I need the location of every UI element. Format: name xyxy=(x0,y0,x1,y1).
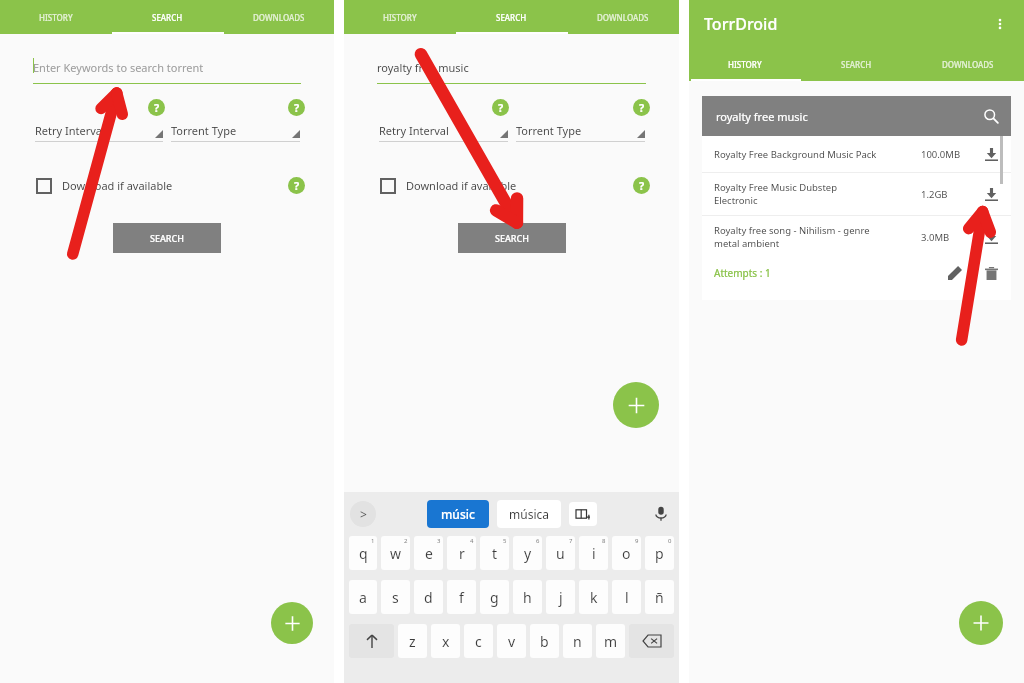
staticText: metal ambient xyxy=(714,237,780,250)
button[interactable]: Retry Interval xyxy=(35,123,163,142)
button[interactable]: Royalty Free Background Music Pack xyxy=(714,136,1001,172)
button[interactable] xyxy=(36,178,52,194)
staticText: l xyxy=(625,588,629,607)
button[interactable]: b xyxy=(530,624,559,658)
button[interactable]: Edit xyxy=(945,263,965,283)
button[interactable]: Add xyxy=(613,382,659,428)
staticText: HISTORY xyxy=(383,12,417,23)
staticText: 3.0MB xyxy=(921,231,950,244)
button[interactable]: s xyxy=(381,580,410,614)
button[interactable]: More options xyxy=(988,12,1012,36)
button[interactable]: Download xyxy=(981,184,1001,204)
button[interactable]: SEARCH xyxy=(800,47,912,81)
button[interactable]: Royalty Free Music Dubstep xyxy=(714,173,1001,215)
button[interactable]: m xyxy=(596,624,625,658)
button[interactable]: r xyxy=(447,536,476,570)
staticText: ? xyxy=(154,100,160,115)
button[interactable]: SEARCH xyxy=(458,223,566,253)
button[interactable]: Download xyxy=(981,144,1001,164)
staticText: 0 xyxy=(668,537,672,545)
staticText: DOWNLOADS xyxy=(942,59,994,70)
staticText: Retry Interval xyxy=(379,123,449,138)
button[interactable]: c xyxy=(464,624,493,658)
button[interactable]: Backspace xyxy=(629,624,674,658)
staticText: Royalty Free Background Music Pack xyxy=(714,148,877,161)
staticText: SEARCH xyxy=(496,12,527,23)
button[interactable]: a xyxy=(349,580,377,614)
button[interactable]: p xyxy=(645,536,674,570)
button[interactable]: x xyxy=(431,624,460,658)
button[interactable]: Add xyxy=(271,602,313,644)
staticText: c xyxy=(475,632,482,651)
button[interactable]: z xyxy=(398,624,427,658)
button[interactable]: Torrent Type xyxy=(516,123,645,142)
button[interactable]: músic xyxy=(427,500,489,528)
button[interactable]: i xyxy=(579,536,608,570)
staticText: a xyxy=(359,588,367,607)
button[interactable]: música xyxy=(497,500,561,528)
staticText: 3 xyxy=(437,537,441,545)
button[interactable]: y xyxy=(513,536,542,570)
staticText: HISTORY xyxy=(728,59,762,70)
button[interactable]: j xyxy=(546,580,575,614)
button[interactable]: Shift xyxy=(349,624,394,658)
button[interactable]: Torrent Type xyxy=(171,123,300,142)
staticText: s xyxy=(392,588,399,607)
button[interactable]: SEARCH xyxy=(113,223,221,253)
button[interactable]: n xyxy=(563,624,592,658)
staticText: 100.0MB xyxy=(921,148,961,161)
button[interactable]: HISTORY xyxy=(0,0,112,34)
staticText: > xyxy=(360,506,367,522)
button[interactable]: More suggestions xyxy=(350,501,376,527)
button[interactable]: Add xyxy=(959,601,1003,645)
button[interactable]: SEARCH xyxy=(455,0,567,34)
button[interactable]: g xyxy=(480,580,509,614)
button[interactable]: ñ xyxy=(645,580,674,614)
button[interactable]: e xyxy=(414,536,443,570)
button[interactable]: Help xyxy=(288,99,305,116)
button[interactable]: Royalty free song - Nihilism - genre xyxy=(714,216,1001,258)
button[interactable]: t xyxy=(480,536,509,570)
button[interactable]: f xyxy=(447,580,476,614)
staticText: d xyxy=(424,588,433,607)
button[interactable]: u xyxy=(546,536,575,570)
button[interactable]: HISTORY xyxy=(689,47,800,81)
button[interactable]: Help xyxy=(288,177,305,194)
staticText: SEARCH xyxy=(150,232,184,244)
button[interactable]: Download xyxy=(981,227,1001,247)
button[interactable]: Retry Interval xyxy=(379,123,508,142)
button[interactable]: o xyxy=(612,536,641,570)
button[interactable]: d xyxy=(414,580,443,614)
staticText: SEARCH xyxy=(152,12,183,23)
button[interactable]: k xyxy=(579,580,608,614)
button[interactable]: q xyxy=(349,536,377,570)
staticText: h xyxy=(523,588,532,607)
button[interactable]: Help xyxy=(492,99,509,116)
button[interactable]: l xyxy=(612,580,641,614)
button[interactable]: DOWNLOADS xyxy=(567,0,679,34)
button[interactable]: HISTORY xyxy=(344,0,455,34)
staticText: o xyxy=(622,544,631,563)
staticText: TorrDroid xyxy=(704,13,778,35)
staticText: n xyxy=(573,632,582,651)
button[interactable]: Voice input xyxy=(649,502,673,526)
button[interactable]: royalty free music xyxy=(716,96,1001,136)
button[interactable]: SEARCH xyxy=(112,0,223,34)
button[interactable]: Delete xyxy=(981,263,1001,283)
button[interactable]: v xyxy=(497,624,526,658)
button[interactable]: Dictionary xyxy=(569,502,597,526)
button[interactable]: DOWNLOADS xyxy=(223,0,334,34)
staticText: Download if available xyxy=(406,178,517,193)
button[interactable]: h xyxy=(513,580,542,614)
staticText: músic xyxy=(441,506,475,522)
staticText: t xyxy=(492,544,498,563)
button[interactable]: Help xyxy=(633,177,650,194)
button[interactable]: Help xyxy=(148,99,165,116)
staticText: ? xyxy=(294,100,300,115)
button[interactable]: DOWNLOADS xyxy=(912,47,1024,81)
button[interactable]: w xyxy=(381,536,410,570)
button[interactable]: Help xyxy=(633,99,650,116)
staticText: royalty free music xyxy=(716,109,808,124)
staticText: SEARCH xyxy=(495,232,529,244)
button[interactable] xyxy=(380,178,396,194)
